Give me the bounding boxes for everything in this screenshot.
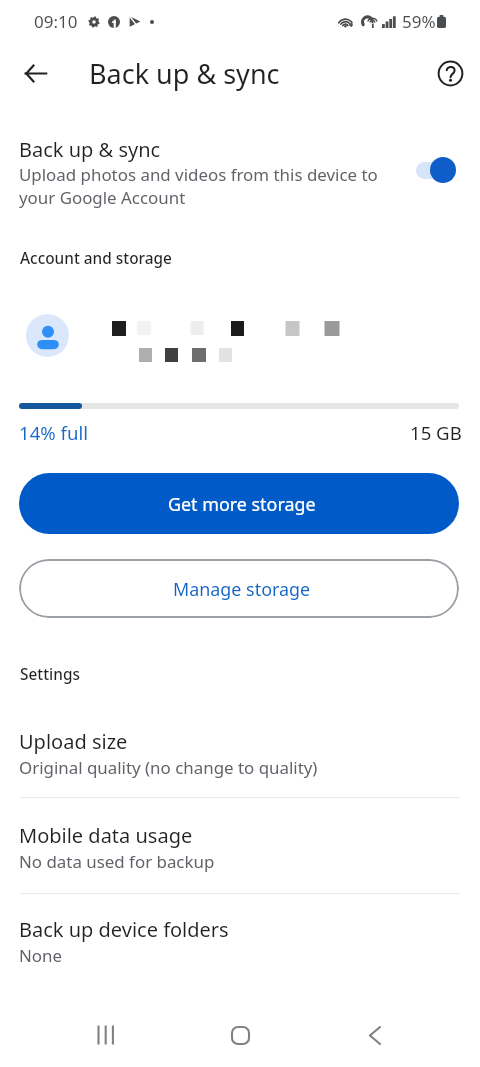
button[interactable]: Help — [426, 49, 474, 97]
staticText: 59% — [402, 10, 436, 33]
button[interactable]: Get more storage — [19, 473, 459, 534]
button[interactable]: Recent apps — [66, 1003, 146, 1067]
staticText: Back up & sync — [89, 55, 280, 92]
staticText: Back up & sync — [19, 136, 161, 163]
button[interactable]: Manage storage — [19, 559, 459, 618]
staticText: Original quality (no change to quality) — [19, 756, 318, 779]
staticText: Get more storage — [168, 492, 316, 516]
staticText: No data used for backup — [19, 850, 215, 873]
staticText: Back up device folders — [19, 916, 229, 943]
staticText: 14% full — [19, 420, 89, 445]
staticText: 09:10 — [34, 10, 78, 33]
button[interactable]: Home — [200, 1003, 280, 1067]
staticText: Mobile data usage — [19, 822, 193, 849]
button[interactable]: Back up & sync — [0, 118, 480, 218]
staticText: Account and storage — [20, 248, 172, 269]
button[interactable]: Back up device folders — [0, 903, 480, 983]
staticText: Upload size — [19, 728, 128, 755]
staticText: Upload photos and videos from this devic… — [19, 163, 378, 209]
button[interactable]: Account avatar — [26, 314, 69, 357]
button[interactable]: Navigate back — [11, 49, 59, 97]
staticText: 15 GB — [410, 420, 462, 445]
button[interactable]: Mobile data usage — [0, 809, 480, 905]
button[interactable]: Back — [335, 1003, 415, 1067]
button[interactable]: Upload size — [0, 715, 480, 811]
staticText: Settings — [20, 664, 80, 685]
staticText: None — [19, 944, 63, 967]
staticText: Manage storage — [173, 577, 311, 601]
